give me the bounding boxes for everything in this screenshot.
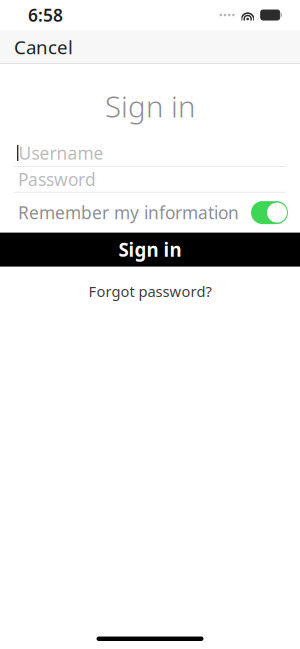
- staticText: Username: [18, 141, 103, 164]
- button[interactable]: Cancel: [0, 27, 87, 67]
- button[interactable]: Forgot password?: [72, 276, 227, 307]
- staticText: Cancel: [14, 35, 73, 59]
- staticText: Sign in: [105, 86, 195, 125]
- staticText: Remember my information: [18, 201, 239, 224]
- staticText: Password: [18, 168, 96, 191]
- button[interactable]: Remember my information: [0, 193, 300, 233]
- staticText: Sign in: [118, 237, 181, 262]
- staticText: 6:58: [28, 3, 63, 26]
- staticText: Forgot password?: [88, 282, 211, 301]
- button[interactable]: Sign in: [0, 233, 300, 267]
